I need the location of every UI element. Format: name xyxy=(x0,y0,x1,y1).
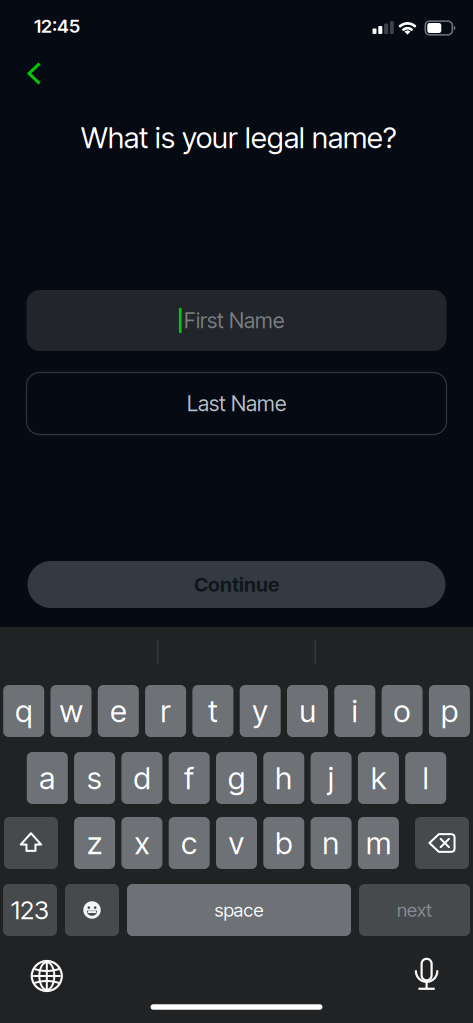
button[interactable]: s xyxy=(74,752,115,804)
staticText: j xyxy=(328,760,334,796)
staticText: q xyxy=(15,693,32,729)
staticText: n xyxy=(323,825,340,861)
staticText: s xyxy=(87,760,102,796)
staticText: m xyxy=(366,825,391,861)
staticText: 123 xyxy=(11,895,49,925)
button[interactable]: c xyxy=(169,817,210,869)
button[interactable]: f xyxy=(169,752,210,804)
staticText: h xyxy=(275,760,292,796)
button[interactable]: b xyxy=(263,817,304,869)
staticText: l xyxy=(423,760,429,796)
button[interactable]: n xyxy=(311,817,352,869)
staticText: w xyxy=(59,693,82,729)
staticText: f xyxy=(184,760,194,796)
button[interactable]: y xyxy=(240,685,281,737)
staticText: z xyxy=(87,825,102,861)
button[interactable]: Dictation xyxy=(405,952,449,996)
staticText: k xyxy=(371,760,386,796)
button[interactable]: r xyxy=(145,685,186,737)
button[interactable]: Back xyxy=(12,53,56,93)
staticText: g xyxy=(228,760,245,796)
button[interactable]: Shift xyxy=(4,817,58,869)
staticText: What is your legal name? xyxy=(81,120,396,155)
button[interactable]: i xyxy=(334,685,375,737)
button[interactable]: e xyxy=(98,685,139,737)
button[interactable]: w xyxy=(50,685,91,737)
staticText: p xyxy=(441,693,458,729)
button[interactable]: u xyxy=(287,685,328,737)
staticText: a xyxy=(39,760,55,796)
button[interactable]: Delete xyxy=(415,817,469,869)
button[interactable]: d xyxy=(121,752,162,804)
staticText: 12:45 xyxy=(34,15,80,37)
button[interactable]: Continue xyxy=(27,561,445,608)
button[interactable]: q xyxy=(3,685,44,737)
button[interactable]: l xyxy=(405,752,446,804)
staticText: space xyxy=(214,899,263,921)
button[interactable]: k xyxy=(358,752,399,804)
staticText: y xyxy=(252,693,268,729)
button[interactable]: x xyxy=(121,817,162,869)
staticText: i xyxy=(352,693,358,729)
staticText: b xyxy=(275,825,292,861)
button[interactable]: Emoji xyxy=(65,884,119,936)
staticText: r xyxy=(161,693,171,729)
button[interactable]: m xyxy=(358,817,399,869)
button[interactable]: 123 xyxy=(3,884,57,936)
button[interactable]: Switch keyboard xyxy=(25,954,69,998)
staticText: o xyxy=(394,693,411,729)
button[interactable]: h xyxy=(263,752,304,804)
button[interactable]: a xyxy=(27,752,68,804)
staticText: e xyxy=(110,693,126,729)
button[interactable]: j xyxy=(311,752,352,804)
staticText: d xyxy=(133,760,150,796)
button[interactable]: v xyxy=(216,817,257,869)
button[interactable]: z xyxy=(74,817,115,869)
button[interactable]: p xyxy=(429,685,470,737)
staticText: First Name xyxy=(184,308,284,333)
button[interactable]: space xyxy=(127,884,351,936)
button[interactable]: o xyxy=(382,685,423,737)
staticText: t xyxy=(208,693,218,729)
staticText: Continue xyxy=(194,573,279,596)
button[interactable]: t xyxy=(192,685,233,737)
staticText: x xyxy=(134,825,149,861)
staticText: Last Name xyxy=(187,391,286,416)
button[interactable]: Last Name xyxy=(26,372,446,434)
button[interactable]: next xyxy=(359,884,470,936)
staticText: next xyxy=(397,899,432,921)
staticText: c xyxy=(181,825,197,861)
button[interactable]: g xyxy=(216,752,257,804)
staticText: v xyxy=(228,825,244,861)
staticText: u xyxy=(299,693,315,729)
button[interactable]: First Name xyxy=(26,290,446,351)
